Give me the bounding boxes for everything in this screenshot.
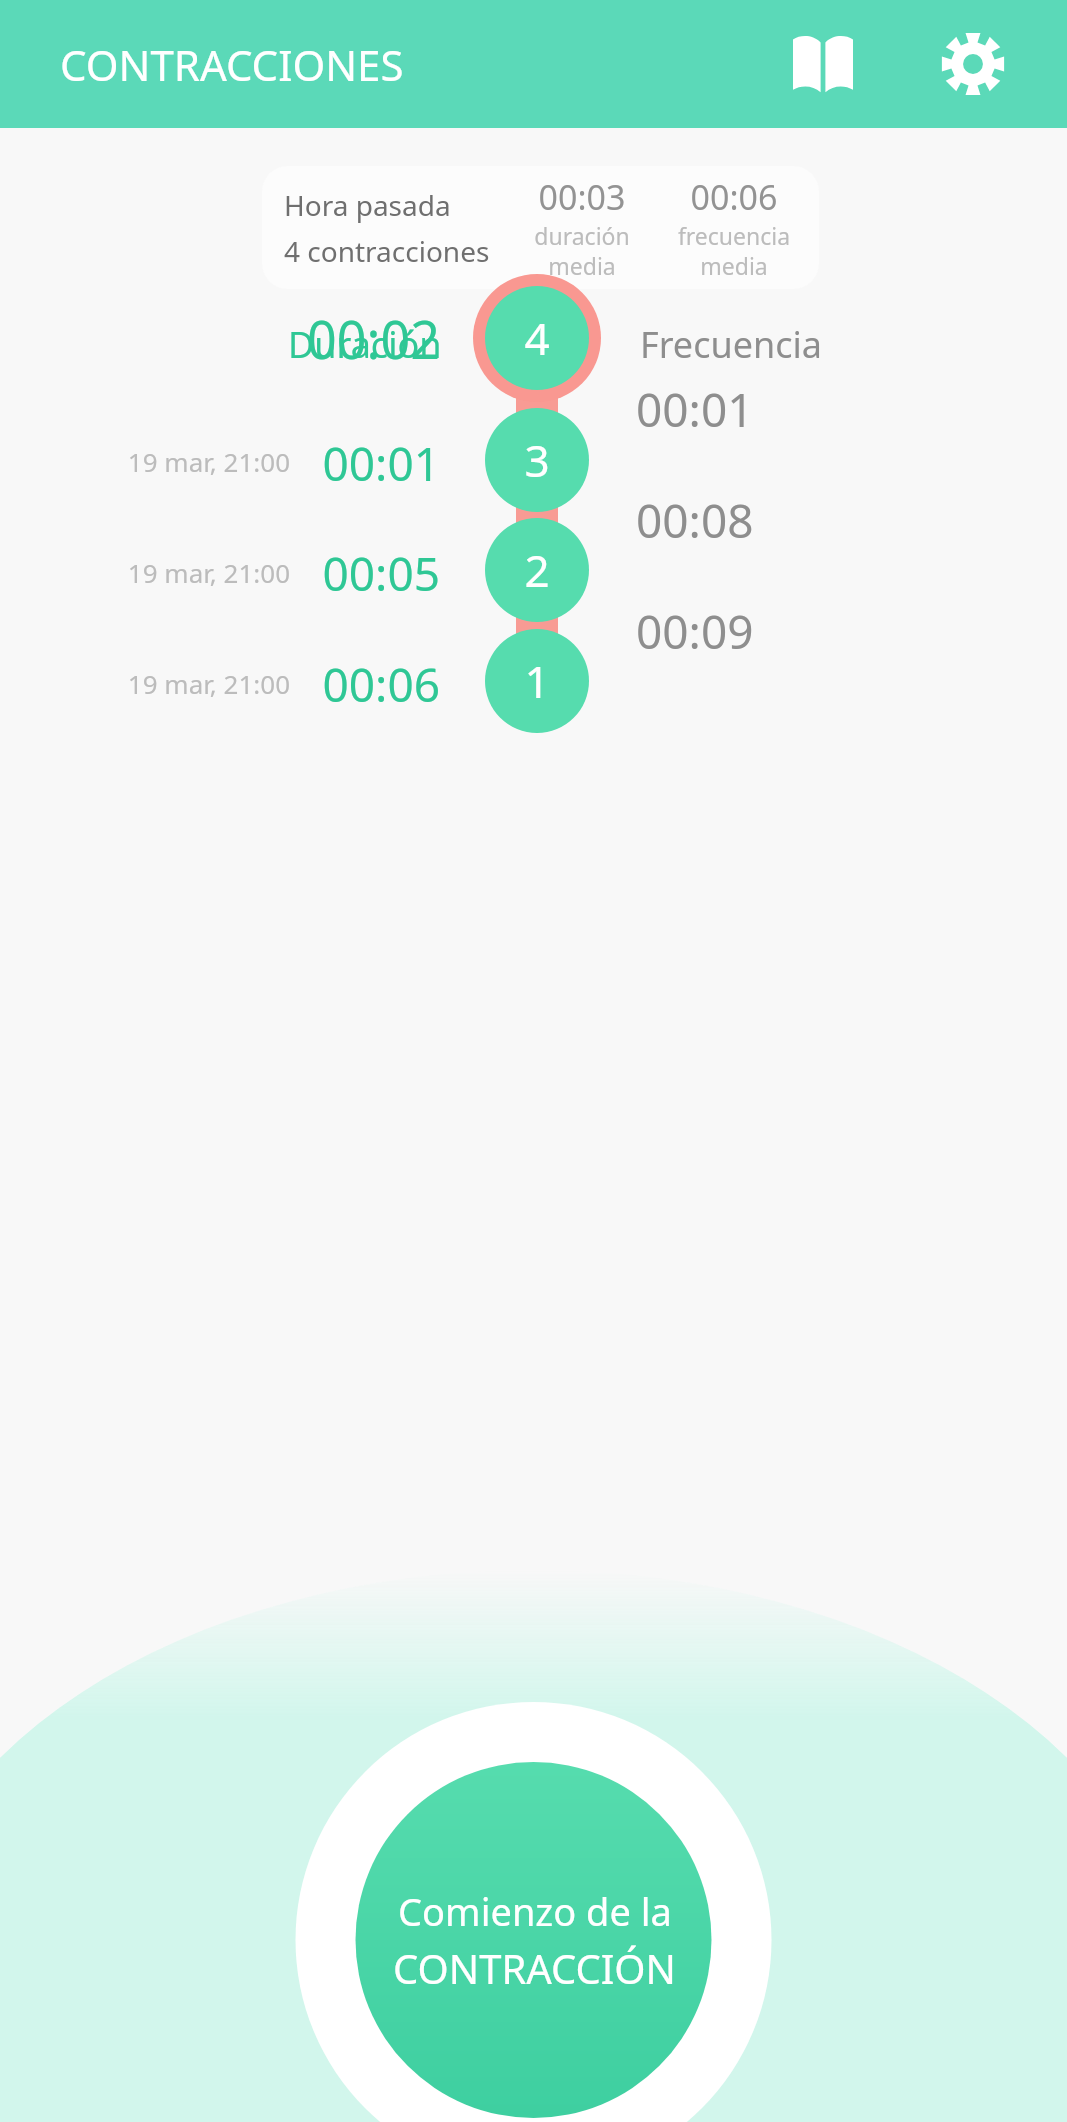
button[interactable]: 3 bbox=[485, 408, 589, 512]
staticText: CONTRACCIONES bbox=[60, 36, 404, 93]
staticText: 4 bbox=[524, 308, 550, 368]
staticText: 2 bbox=[524, 540, 550, 600]
staticText: Hora pasada 4 contracciones bbox=[284, 186, 490, 270]
button[interactable]: Ajustes bbox=[923, 14, 1023, 114]
staticText: CONTRACCIÓN bbox=[393, 1941, 676, 1995]
staticText: 3 bbox=[524, 430, 550, 490]
staticText: 00:06 bbox=[0, 653, 440, 716]
staticText: 00:01 bbox=[636, 378, 754, 441]
staticText: 19 mar, 21:00 bbox=[0, 666, 290, 701]
staticText: 19 mar, 21:00 bbox=[0, 555, 290, 590]
button[interactable]: 1 bbox=[485, 629, 589, 733]
staticText: 00:09 bbox=[636, 600, 754, 663]
staticText: 19 mar, 21:00 bbox=[0, 444, 290, 479]
staticText: 00:02 bbox=[0, 303, 440, 374]
staticText: 00:05 bbox=[0, 542, 440, 605]
staticText: 00:03 bbox=[512, 174, 652, 220]
staticText: duración media bbox=[512, 220, 652, 281]
staticText: 1 bbox=[524, 651, 550, 711]
staticText: Comienzo de la bbox=[398, 1885, 672, 1937]
staticText: Duración bbox=[288, 320, 442, 369]
button[interactable]: Comienzo de la bbox=[356, 1762, 712, 2118]
staticText: 00:08 bbox=[636, 489, 754, 552]
button[interactable]: Hora pasada 4 contracciones bbox=[262, 166, 819, 289]
button[interactable]: 4 bbox=[485, 286, 589, 390]
button[interactable]: 2 bbox=[485, 518, 589, 622]
button[interactable]: Historial bbox=[773, 14, 873, 114]
staticText: frecuencia media bbox=[659, 220, 809, 281]
staticText: 00:01 bbox=[0, 432, 440, 495]
staticText: 00:06 bbox=[659, 174, 809, 220]
staticText: Frecuencia bbox=[640, 320, 822, 369]
